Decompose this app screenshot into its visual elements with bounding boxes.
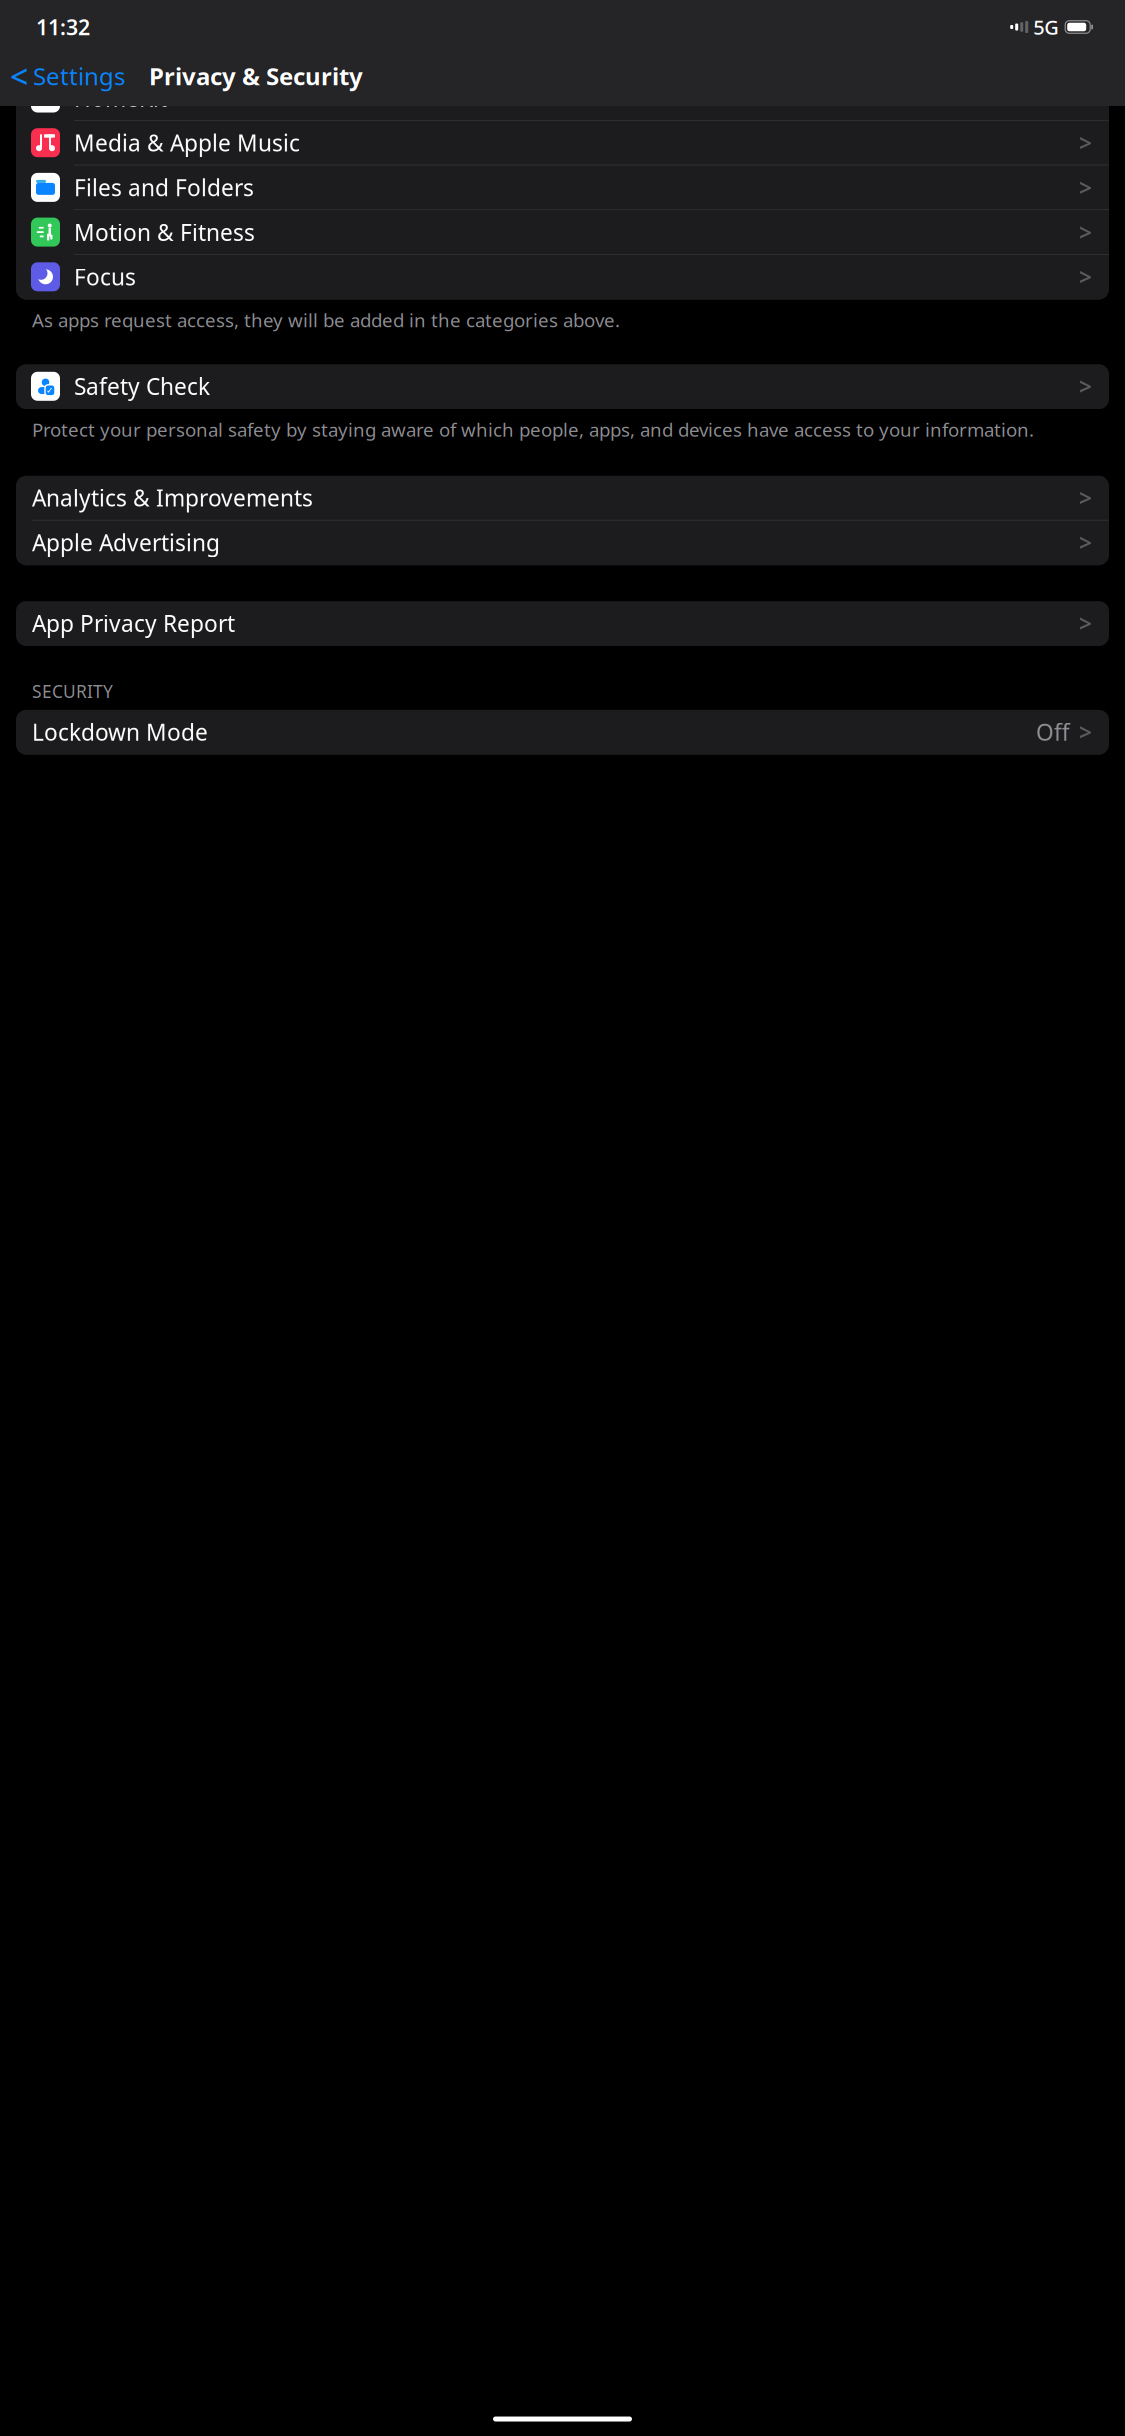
button[interactable]: Lockdown Mode (16, 710, 1109, 755)
staticText: < (10, 55, 28, 97)
staticText: Media & Apple Music (74, 128, 300, 158)
staticText: > (1079, 527, 1092, 557)
button[interactable]: HomeKit (16, 76, 1109, 121)
staticText: Focus (74, 262, 136, 292)
staticText: App Privacy Report (32, 608, 235, 638)
staticText: Lockdown Mode (32, 717, 208, 747)
button[interactable]: Media & Apple Music (16, 121, 1109, 165)
staticText: 5G (1033, 14, 1059, 40)
staticText: Safety Check (74, 371, 210, 401)
staticText: > (1079, 128, 1092, 158)
staticText: Settings (33, 60, 125, 92)
staticText: Motion & Fitness (74, 217, 255, 247)
staticText: > (1079, 608, 1092, 638)
button[interactable]: < (0, 49, 125, 103)
staticText: Apple Advertising (32, 527, 220, 557)
button[interactable]: Motion & Fitness (16, 210, 1109, 255)
button[interactable]: App Privacy Report (16, 601, 1109, 646)
staticText: > (1079, 83, 1092, 113)
staticText: ✓ (46, 385, 54, 396)
staticText: SECURITY (32, 680, 113, 703)
staticText: Protect your personal safety by staying … (32, 417, 1034, 442)
staticText: > (1079, 172, 1092, 202)
staticText: 11:32 (36, 13, 90, 41)
staticText: Files and Folders (74, 172, 254, 202)
button[interactable]: Apple Advertising (16, 520, 1109, 565)
staticText: > (1079, 483, 1092, 513)
staticText: > (1079, 371, 1092, 401)
button[interactable]: Analytics & Improvements (16, 476, 1109, 520)
staticText: HomeKit (74, 83, 167, 113)
staticText: > (1079, 217, 1092, 247)
staticText: > (1079, 717, 1092, 747)
button[interactable]: Files and Folders (16, 165, 1109, 210)
staticText: Privacy & Security (149, 60, 363, 92)
button[interactable]: Focus (16, 255, 1109, 299)
button[interactable]: ✓ (16, 364, 1109, 409)
staticText: As apps request access, they will be add… (32, 307, 620, 332)
staticText: Analytics & Improvements (32, 483, 313, 513)
staticText: Off (1036, 717, 1070, 747)
staticText: > (1079, 262, 1092, 292)
